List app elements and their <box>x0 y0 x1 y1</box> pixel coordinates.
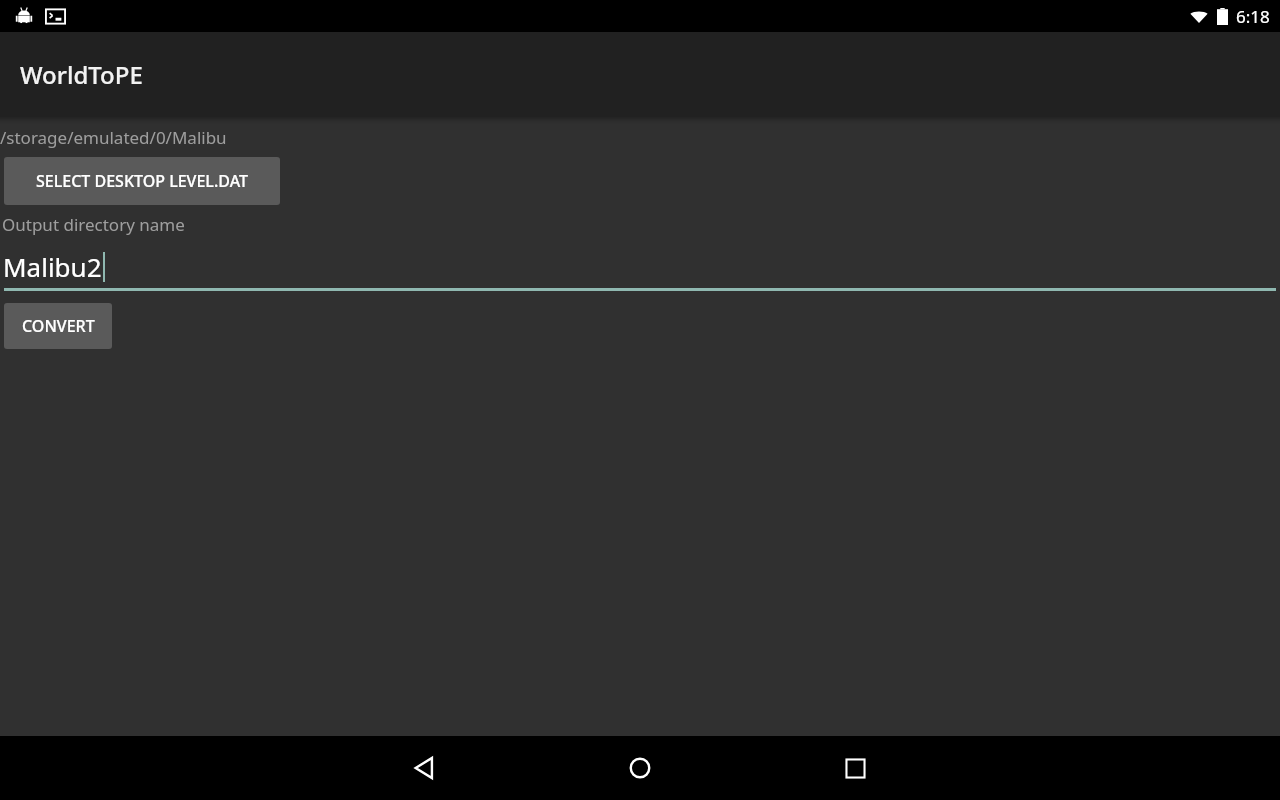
button[interactable]: CONVERT <box>4 303 112 349</box>
button[interactable]: Back <box>392 736 456 800</box>
staticText: /storage/emulated/0/Malibu <box>0 126 227 149</box>
staticText: SELECT DESKTOP LEVEL.DAT <box>36 170 248 192</box>
button[interactable]: Recent apps <box>823 736 887 800</box>
staticText: CONVERT <box>22 315 95 337</box>
button[interactable]: SELECT DESKTOP LEVEL.DAT <box>4 157 280 205</box>
staticText: WorldToPE <box>20 58 143 91</box>
button[interactable]: Home <box>608 736 672 800</box>
staticText: Output directory name <box>2 213 185 236</box>
staticText: 6:18 <box>1236 5 1270 28</box>
staticText: Malibu2 <box>3 249 102 284</box>
button[interactable]: Malibu2 <box>0 244 1280 288</box>
